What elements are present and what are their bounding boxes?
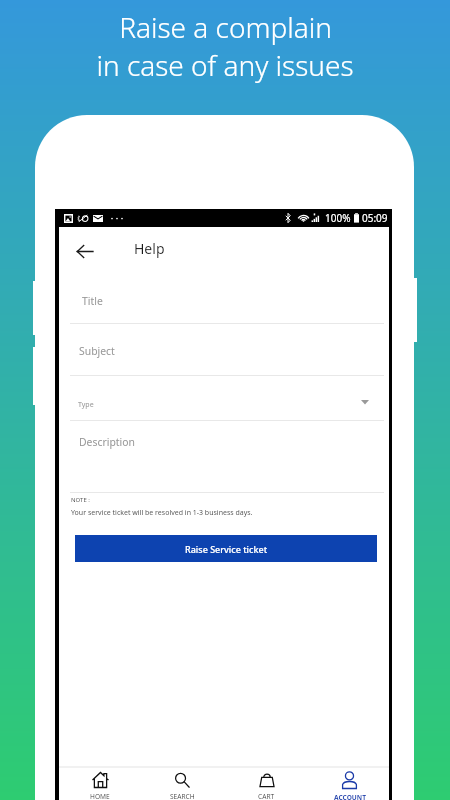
button[interactable] xyxy=(59,324,389,376)
staticText: Your service ticket will be resolved in … xyxy=(71,508,253,518)
staticText: ACCOUNT xyxy=(334,793,366,800)
staticText: NOTE : xyxy=(71,496,90,504)
staticText: Subject xyxy=(79,344,115,358)
button[interactable] xyxy=(59,269,389,324)
staticText: 100% xyxy=(325,211,351,225)
button[interactable]: ACCOUNT xyxy=(310,768,389,800)
button[interactable]: Raise Service ticket xyxy=(75,535,377,562)
staticText: 05:09 xyxy=(362,211,388,225)
button[interactable] xyxy=(59,422,389,493)
button[interactable]: CART xyxy=(223,768,310,800)
staticText: Title xyxy=(82,294,103,308)
button[interactable]: Back xyxy=(74,240,96,262)
staticText: in case of any issues xyxy=(96,46,354,84)
button[interactable] xyxy=(59,376,389,422)
staticText: Description xyxy=(79,435,135,449)
staticText: CART xyxy=(258,792,275,800)
staticText: Type xyxy=(78,400,94,410)
button[interactable]: HOME xyxy=(59,768,141,800)
staticText: Raise a complain xyxy=(119,8,332,46)
staticText: Raise Service ticket xyxy=(185,543,268,555)
button[interactable]: SEARCH xyxy=(141,768,223,800)
staticText: HOME xyxy=(90,792,110,800)
staticText: Help xyxy=(134,239,165,258)
staticText: SEARCH xyxy=(170,792,195,800)
